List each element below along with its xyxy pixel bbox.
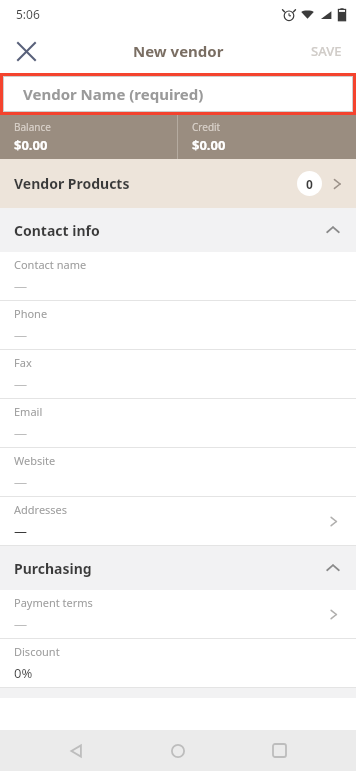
staticText: Discount [14, 644, 60, 659]
button[interactable]: Phone [0, 301, 356, 349]
button[interactable]: Payment terms [0, 590, 356, 638]
button[interactable]: Contact info [0, 208, 356, 252]
staticText: — [14, 375, 28, 393]
button[interactable]: Credit [178, 115, 356, 159]
staticText: — [14, 277, 28, 295]
button[interactable]: Email [0, 399, 356, 447]
button[interactable]: Discount [0, 639, 356, 687]
staticText: — [14, 522, 28, 540]
button[interactable]: Vendor Products [0, 159, 356, 208]
staticText: Purchasing [14, 559, 92, 578]
button[interactable]: Balance [0, 115, 177, 159]
staticText: SAVE [311, 42, 342, 60]
staticText: Email [14, 404, 43, 419]
staticText: Website [14, 453, 56, 468]
button[interactable]: Addresses [0, 497, 356, 545]
staticText: — [14, 424, 28, 442]
button[interactable]: Website [0, 448, 356, 496]
staticText: Phone [14, 306, 48, 321]
button[interactable]: Back [53, 730, 101, 771]
button[interactable]: Home [154, 730, 202, 771]
staticText: — [14, 326, 28, 344]
staticText: Addresses [14, 502, 68, 517]
staticText: 0% [14, 664, 33, 682]
button[interactable]: Fax [0, 350, 356, 398]
staticText: $0.00 [192, 136, 226, 154]
button[interactable]: SAVE [297, 32, 356, 70]
staticText: — [14, 473, 28, 491]
staticText: Vendor Name (required) [23, 84, 204, 104]
staticText: New vendor [133, 41, 224, 61]
button[interactable]: Recent apps [255, 730, 303, 771]
staticText: 5:06 [16, 6, 40, 22]
staticText: Contact info [14, 221, 100, 240]
staticText: Payment terms [14, 595, 93, 610]
button[interactable]: Contact name [0, 252, 356, 300]
staticText: Fax [14, 355, 32, 370]
staticText: Credit [192, 120, 221, 134]
staticText: Vendor Products [14, 174, 130, 193]
button[interactable]: Purchasing [0, 546, 356, 590]
staticText: — [14, 615, 28, 633]
button[interactable]: Vendor Name (required) [3, 76, 353, 112]
staticText: Contact name [14, 257, 87, 272]
staticText: $0.00 [14, 136, 48, 154]
staticText: Balance [14, 120, 51, 134]
staticText: 0 [306, 176, 313, 192]
button[interactable]: Close [6, 31, 46, 71]
